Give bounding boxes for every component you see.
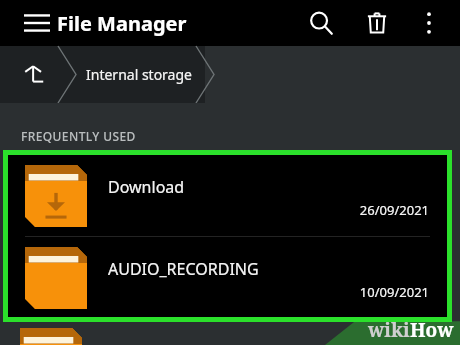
button[interactable]: Delete [356,2,398,44]
button[interactable]: Menu [18,4,56,42]
button[interactable]: Up one level [0,46,67,103]
staticText: How [410,317,454,343]
staticText: AUDIO_RECORDING [108,258,259,280]
button[interactable]: Search [300,2,342,44]
button[interactable]: Internal storage [67,46,205,103]
staticText: FREQUENTLY USED [21,128,136,144]
staticText: 10/09/2021 [359,283,429,301]
button[interactable]: More options [410,4,448,42]
button[interactable]: AUDIO_RECORDING [8,237,447,318]
staticText: 26/09/2021 [359,201,429,219]
staticText: Internal storage [86,65,192,84]
button[interactable]: Download [8,155,447,236]
staticText: wiki [368,317,410,343]
staticText: Download [108,176,185,198]
staticText: File Manager [57,10,187,37]
